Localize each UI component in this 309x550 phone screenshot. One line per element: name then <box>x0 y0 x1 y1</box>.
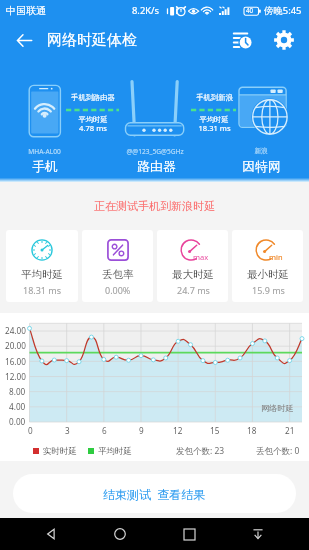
staticText: 0 <box>28 425 33 436</box>
staticText: 24.00 <box>5 325 26 336</box>
button[interactable]: max <box>157 230 228 302</box>
staticText: 最大时延 <box>172 268 214 281</box>
staticText: 路由器 <box>137 159 176 175</box>
staticText: max <box>193 252 209 262</box>
staticText: 0.00 <box>9 416 26 427</box>
staticText: 18.31 ms <box>23 284 62 296</box>
staticText: 丢包率 <box>102 268 134 281</box>
button[interactable]: Hide navigation bar <box>240 518 276 550</box>
staticText: 平均时延 <box>21 268 63 281</box>
staticText: 平均时延 <box>98 446 132 457</box>
staticText: 8.2K/s <box>132 4 160 17</box>
staticText: 发包个数: 23 <box>176 445 225 457</box>
staticText: 21 <box>285 425 295 436</box>
staticText: 0.00% <box>105 284 131 296</box>
staticText: 实时时延 <box>43 446 77 457</box>
staticText: 手机 <box>32 159 58 175</box>
staticText: 15.9 ms <box>252 284 285 296</box>
staticText: 正在测试手机到新浪时延 <box>94 199 215 213</box>
staticText: 9 <box>139 425 144 436</box>
staticText: 中国联通 <box>6 4 46 17</box>
button[interactable]: Settings <box>263 20 305 60</box>
staticText: 手机到路由器 <box>71 93 115 102</box>
staticText: 丢包个数: 0 <box>256 445 300 457</box>
button[interactable]: 结束测试 查看结果 <box>13 474 296 513</box>
staticText: 手机到新浪 <box>196 93 233 102</box>
staticText: 网络时延 <box>261 403 294 413</box>
button[interactable]: 丢包率 <box>82 230 153 302</box>
staticText: 新浪 <box>254 147 268 155</box>
staticText: 结束测试 查看结果 <box>103 486 206 502</box>
button[interactable]: 平均时延 <box>6 230 78 302</box>
staticText: 12 <box>173 425 183 436</box>
staticText: 18.31 ms <box>198 123 231 133</box>
staticText: 傍晚5:45 <box>264 4 302 17</box>
staticText: min <box>269 252 283 262</box>
staticText: 4.00 <box>9 401 26 412</box>
staticText: 24.7 ms <box>177 284 210 296</box>
staticText: 平均时延 <box>78 115 108 124</box>
staticText: 8.00 <box>9 386 26 397</box>
staticText: 3 <box>65 425 70 436</box>
staticText: 40 <box>246 6 254 14</box>
staticText: 最小时延 <box>247 268 289 281</box>
staticText: 18 <box>247 425 257 436</box>
staticText: 15 <box>210 425 220 436</box>
staticText: @@123_5G@5GHz <box>126 147 184 156</box>
staticText: 20.00 <box>5 340 26 351</box>
button[interactable]: Back <box>0 20 48 60</box>
button[interactable]: Home <box>102 518 138 550</box>
staticText: 网络时延体检 <box>47 31 137 50</box>
staticText: MHA-AL00 <box>28 147 61 156</box>
staticText: 4.78 ms <box>79 123 107 133</box>
button[interactable]: min <box>232 230 303 302</box>
button[interactable]: Back <box>33 518 69 550</box>
staticText: 16.00 <box>5 356 26 367</box>
staticText: 12.00 <box>5 371 26 382</box>
staticText: 平均时延 <box>199 115 229 124</box>
button[interactable]: Recents <box>171 518 207 550</box>
staticText: 因特网 <box>242 159 281 175</box>
button[interactable]: History <box>221 20 263 60</box>
staticText: 6 <box>102 425 107 436</box>
